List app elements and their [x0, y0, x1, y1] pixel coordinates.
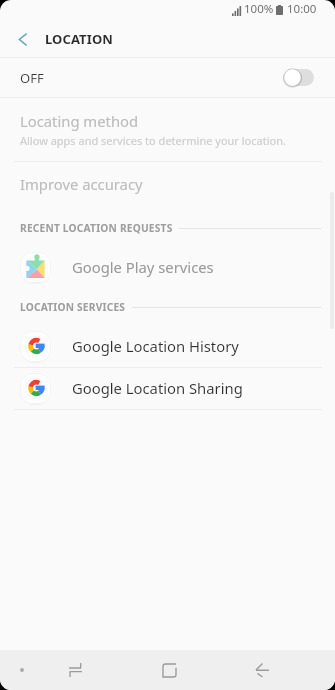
button[interactable]: Improve accuracy: [0, 162, 335, 206]
button[interactable]: Back: [242, 650, 282, 690]
staticText: LOCATION SERVICES: [20, 300, 126, 314]
button[interactable]: Recent apps: [55, 650, 95, 690]
staticText: 10:00: [287, 1, 317, 17]
button[interactable]: Google Location Sharing: [0, 367, 335, 409]
staticText: Improve accuracy: [20, 174, 143, 194]
staticText: RECENT LOCATION REQUESTS: [20, 221, 173, 235]
staticText: OFF: [20, 69, 44, 87]
staticText: Google Play services: [72, 257, 214, 277]
staticText: Locating method: [20, 111, 139, 131]
button[interactable]: Home: [149, 650, 189, 690]
button[interactable]: Locating method: [0, 98, 335, 161]
staticText: LOCATION: [45, 30, 113, 48]
staticText: 100%: [244, 1, 274, 17]
staticText: Allow apps and services to determine you…: [20, 133, 286, 148]
button[interactable]: Navigate up: [8, 25, 37, 54]
button[interactable]: Location off: [283, 68, 314, 87]
staticText: Google Location Sharing: [72, 378, 243, 398]
staticText: Google Location History: [72, 336, 239, 356]
button[interactable]: Google Location History: [0, 325, 335, 367]
button[interactable]: OFF: [0, 58, 335, 97]
button[interactable]: Google Play services: [0, 246, 335, 288]
